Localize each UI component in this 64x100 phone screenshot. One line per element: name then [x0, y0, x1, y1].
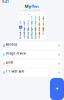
staticText: 23	[35, 28, 37, 35]
staticText: Design review	[6, 52, 26, 55]
staticText: 9	[35, 21, 37, 24]
staticText: 16	[35, 24, 37, 31]
staticText: 15	[31, 24, 33, 31]
staticText: 24	[39, 28, 41, 35]
staticText: 2	[35, 16, 37, 20]
button[interactable]: Design review	[2, 51, 62, 59]
staticText: 31	[39, 33, 41, 40]
staticText: 28	[27, 33, 29, 40]
staticText: 13:00	[6, 65, 10, 66]
staticText: 13	[23, 24, 25, 31]
button[interactable]: Standup	[2, 42, 62, 50]
staticText: 1:1 with Sam	[6, 70, 25, 73]
staticText: Standup	[6, 43, 18, 46]
staticText: 14	[27, 24, 29, 31]
staticText: 26	[20, 33, 22, 40]
staticText: 11	[42, 19, 44, 26]
staticText: 6	[23, 21, 25, 24]
staticText: 5	[20, 21, 22, 24]
staticText: 22	[31, 28, 33, 35]
staticText: 15:00	[6, 74, 10, 76]
staticText: 10	[39, 19, 41, 26]
staticText: March 2024 · 12 events	[24, 9, 40, 11]
staticText: 29	[31, 33, 33, 40]
staticText: 30	[35, 33, 37, 40]
staticText: 8	[31, 21, 33, 24]
staticText: 21	[27, 28, 29, 35]
staticText: 19	[20, 28, 22, 35]
staticText: 18	[42, 24, 44, 31]
staticText: 09:00	[6, 47, 10, 48]
staticText: 7	[27, 21, 29, 24]
staticText: +	[55, 85, 58, 93]
staticText: 3	[39, 16, 41, 20]
staticText: 25	[42, 28, 44, 35]
button[interactable]: 1:1 with Sam	[2, 69, 62, 77]
staticText: 12	[20, 24, 22, 31]
staticText: My	[25, 4, 31, 9]
staticText: Plan	[31, 4, 39, 9]
staticText: 20	[23, 28, 25, 35]
button[interactable]: Lunch	[2, 60, 62, 68]
staticText: Lunch	[6, 61, 14, 64]
staticText: 9:41	[2, 0, 9, 4]
staticText: 27	[23, 33, 25, 40]
staticText: 4	[42, 16, 44, 20]
staticText: 17	[39, 24, 41, 31]
button[interactable]: Add event	[50, 78, 64, 100]
staticText: 1	[31, 16, 33, 20]
staticText: 11:30	[6, 56, 10, 57]
